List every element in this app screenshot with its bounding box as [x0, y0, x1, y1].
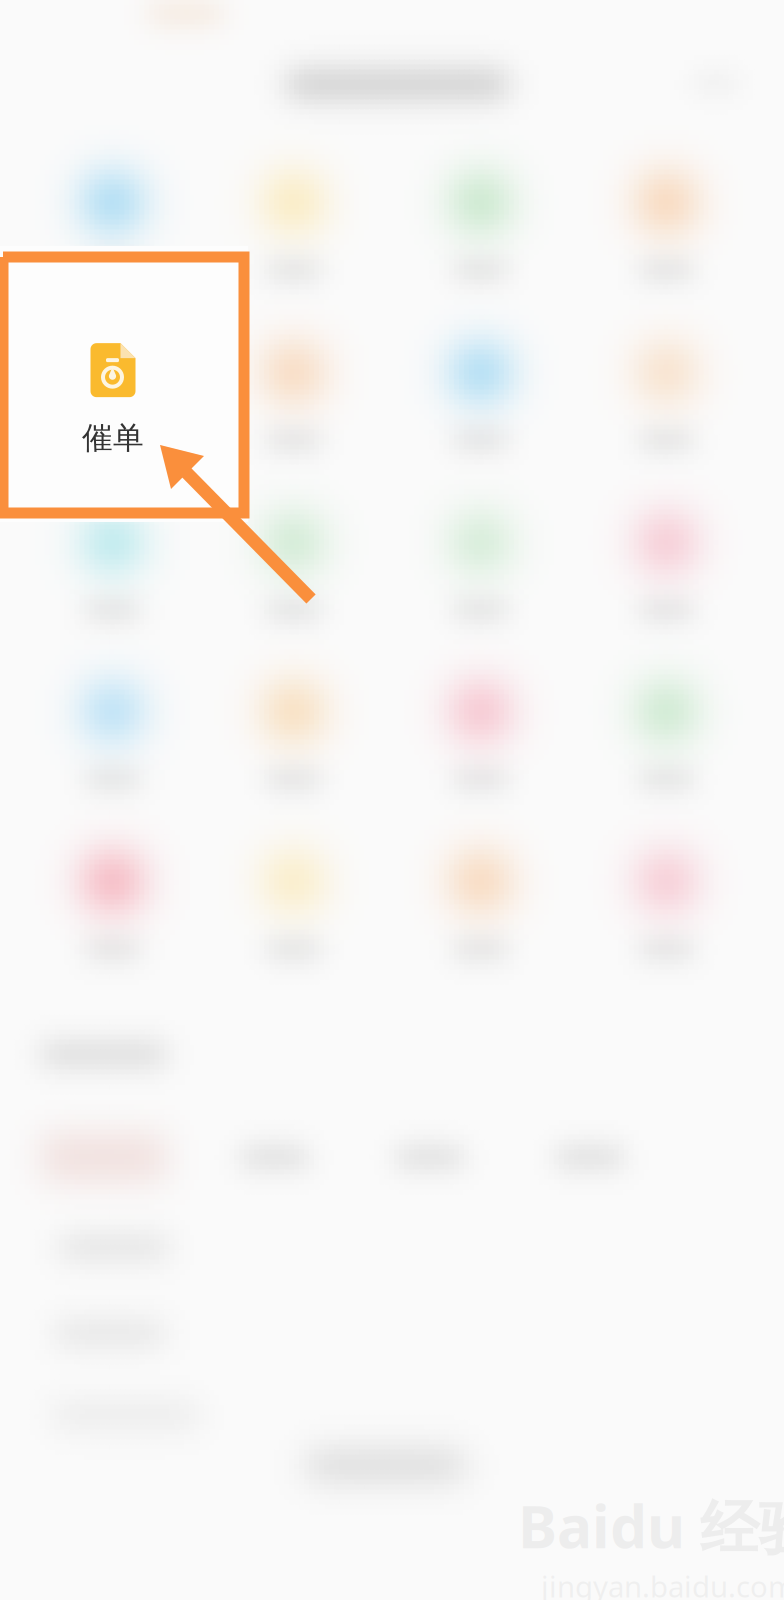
button[interactable]: 催单 — [13, 295, 213, 505]
staticText: 催单 — [82, 419, 144, 457]
staticText: jingyan.baidu.com — [541, 1567, 784, 1600]
staticText: Baidu 经验 — [518, 1486, 784, 1565]
